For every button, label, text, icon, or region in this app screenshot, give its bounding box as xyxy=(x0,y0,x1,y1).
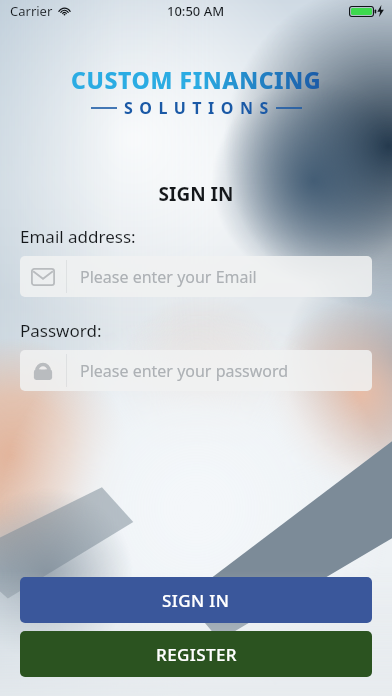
button[interactable]: Password xyxy=(20,350,372,391)
button[interactable]: SIGN IN xyxy=(20,577,372,623)
staticText: 10:50 AM xyxy=(167,2,225,20)
staticText: Please enter your password xyxy=(80,360,289,382)
staticText: Email address: xyxy=(20,225,136,248)
staticText: Password: xyxy=(20,319,102,342)
button[interactable]: REGISTER xyxy=(20,631,372,677)
staticText: Please enter your Email xyxy=(80,266,257,288)
staticText: SIGN IN xyxy=(0,181,392,207)
button[interactable]: Email address xyxy=(20,256,372,297)
staticText: SOLUTIONS xyxy=(124,97,275,119)
staticText: REGISTER xyxy=(156,643,237,666)
staticText: SIGN IN xyxy=(162,589,230,612)
staticText: Carrier xyxy=(10,2,53,20)
staticText: CUSTOM FINANCING xyxy=(71,64,322,95)
